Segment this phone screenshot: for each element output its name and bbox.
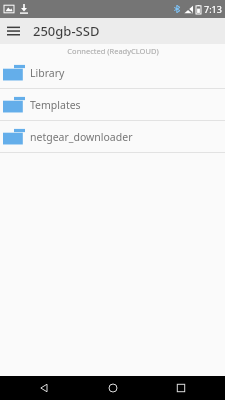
staticText: Templates <box>30 98 81 112</box>
button[interactable]: Back <box>19 376 69 400</box>
staticText: Connected (ReadyCLOUD) <box>67 46 159 56</box>
button[interactable]: Open navigation menu <box>0 18 26 44</box>
staticText: Library <box>30 66 65 80</box>
staticText: 7:13 <box>204 3 222 15</box>
button[interactable]: Recent apps <box>156 376 206 400</box>
button[interactable]: Home <box>88 376 138 400</box>
button[interactable]: netgear_downloader <box>0 121 225 152</box>
button[interactable]: Library <box>0 57 225 88</box>
button[interactable]: Templates <box>0 89 225 120</box>
staticText: netgear_downloader <box>30 130 133 144</box>
staticText: 250gb-SSD <box>33 22 100 40</box>
